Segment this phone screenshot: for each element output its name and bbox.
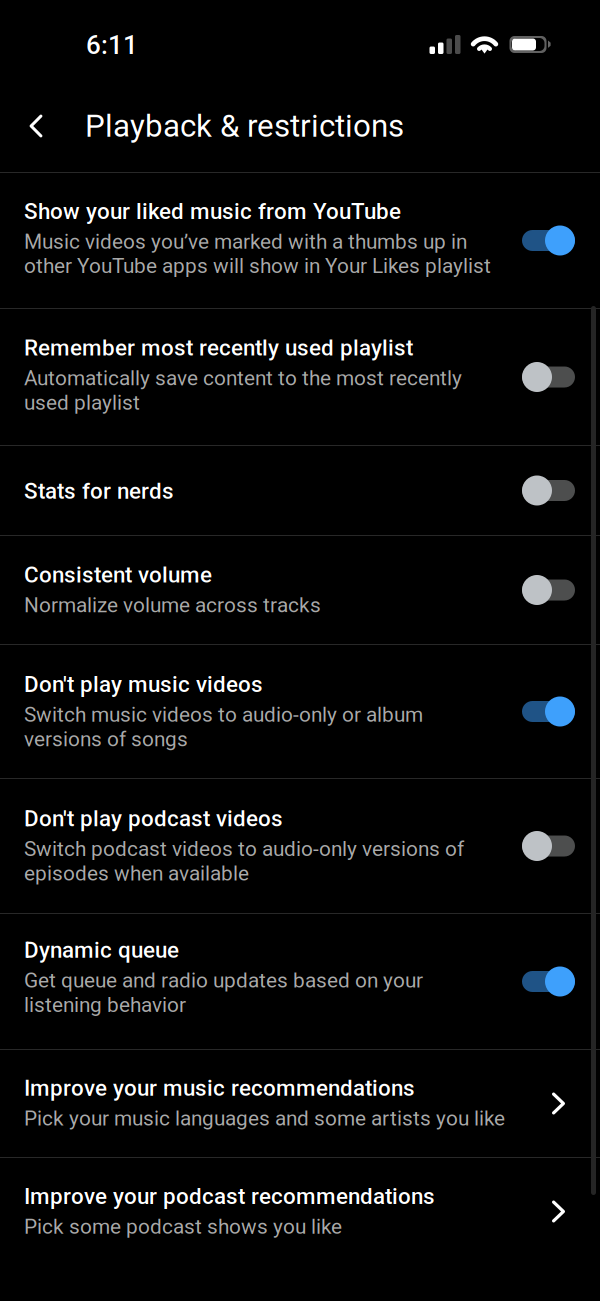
staticText: Don't play podcast videos bbox=[24, 805, 283, 832]
staticText: Consistent volume bbox=[24, 562, 212, 588]
button[interactable]: Dynamic queue bbox=[0, 913, 600, 1049]
staticText: Switch music videos to audio-only or alb… bbox=[24, 702, 423, 751]
staticText: Automatically save content to the most r… bbox=[24, 366, 462, 415]
staticText: Improve your music recommendations bbox=[24, 1075, 415, 1101]
button[interactable]: Consistent volume bbox=[0, 535, 600, 644]
staticText: Normalize volume across tracks bbox=[24, 593, 321, 617]
staticText: Pick your music languages and some artis… bbox=[24, 1106, 505, 1131]
button[interactable]: Stats for nerds bbox=[0, 445, 600, 535]
staticText: Remember most recently used playlist bbox=[24, 335, 413, 361]
staticText: Pick some podcast shows you like bbox=[24, 1214, 342, 1239]
button[interactable]: Don't play music videos bbox=[0, 644, 600, 778]
staticText: Show your liked music from YouTube bbox=[24, 198, 401, 224]
staticText: Get queue and radio updates based on you… bbox=[24, 968, 423, 1017]
staticText: Playback & restrictions bbox=[85, 108, 404, 144]
staticText: Improve your podcast recommendations bbox=[24, 1183, 435, 1209]
button[interactable]: Don't play podcast videos bbox=[0, 778, 600, 913]
staticText: Stats for nerds bbox=[24, 478, 174, 504]
staticText: Music videos you’ve marked with a thumbs… bbox=[24, 229, 491, 278]
button[interactable]: Remember most recently used playlist bbox=[0, 308, 600, 445]
staticText: 6:11 bbox=[86, 30, 138, 60]
button[interactable]: Show your liked music from YouTube bbox=[0, 172, 600, 308]
button[interactable]: Improve your music recommendations bbox=[0, 1049, 600, 1157]
button[interactable]: Improve your podcast recommendations bbox=[0, 1157, 600, 1265]
button[interactable]: Back bbox=[7, 97, 65, 155]
staticText: Switch podcast videos to audio-only vers… bbox=[24, 837, 464, 885]
staticText: Dynamic queue bbox=[24, 937, 179, 963]
staticText: Don't play music videos bbox=[24, 671, 263, 697]
